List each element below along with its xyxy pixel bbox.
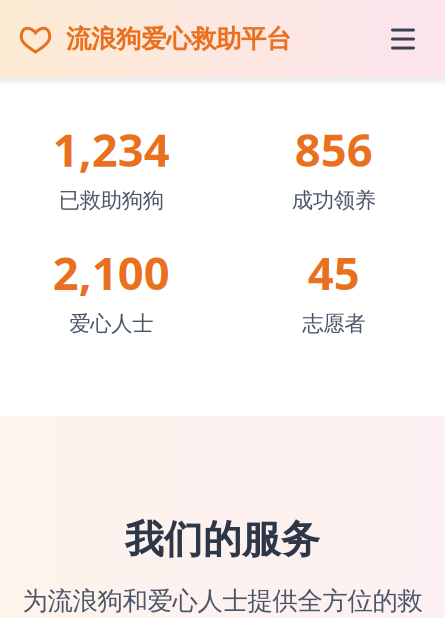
staticText: 已救助狗狗	[59, 187, 164, 213]
staticText: 2,100	[53, 242, 170, 303]
staticText: 志愿者	[302, 311, 365, 337]
staticText: 856	[295, 119, 373, 179]
staticText: 45	[308, 242, 360, 303]
staticText: 我们的服务	[125, 516, 320, 563]
staticText: 1,234	[53, 119, 170, 179]
staticText: 成功领养	[292, 187, 376, 213]
button[interactable]: 流浪狗爱心救助平台	[19, 21, 291, 57]
staticText: 爱心人士	[69, 311, 153, 337]
button[interactable]: 菜单	[380, 16, 426, 62]
staticText: 流浪狗爱心救助平台	[66, 23, 291, 54]
staticText: 为流浪狗和爱心人士提供全方位的救	[22, 585, 422, 617]
